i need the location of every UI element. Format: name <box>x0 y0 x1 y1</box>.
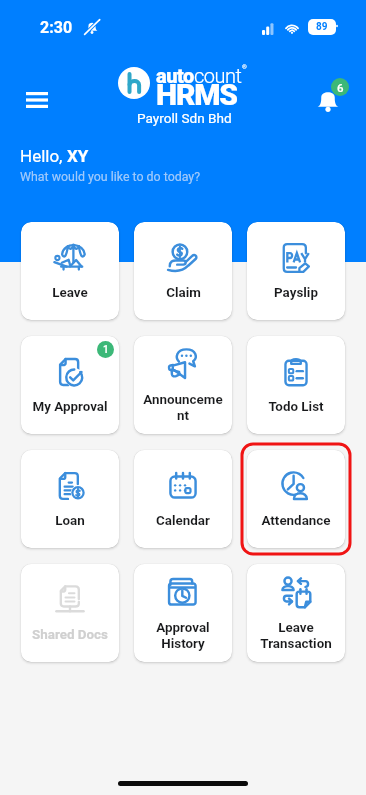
staticText: XY <box>67 146 89 166</box>
staticText: Leave <box>52 285 88 301</box>
staticText: HRMS <box>156 77 237 112</box>
staticText: 1 <box>103 344 109 356</box>
button[interactable]: Payslip <box>247 222 345 320</box>
button[interactable]: Announcement <box>134 336 232 434</box>
staticText: Todo List <box>268 399 324 415</box>
button[interactable]: Menu <box>18 81 56 119</box>
staticText: Calendar <box>156 513 210 529</box>
button[interactable]: Leave <box>21 222 119 320</box>
button[interactable]: Calendar <box>134 450 232 548</box>
staticText: 2:30 <box>40 18 73 37</box>
button[interactable]: Notifications <box>312 74 354 116</box>
staticText: count <box>194 64 242 87</box>
staticText: Leave Transaction <box>256 620 336 651</box>
staticText: ® <box>242 63 247 70</box>
button[interactable]: Shared Docs <box>21 564 119 662</box>
staticText: Payroll Sdn Bhd <box>137 110 232 126</box>
staticText: Hello, <box>20 146 67 166</box>
button[interactable]: Leave Transaction <box>247 564 345 662</box>
button[interactable]: Approval History <box>134 564 232 662</box>
staticText: Announcement <box>143 392 223 423</box>
button[interactable]: Loan <box>21 450 119 548</box>
staticText: Approval History <box>143 620 223 651</box>
button[interactable]: Attendance <box>247 450 345 548</box>
staticText: 89 <box>316 21 328 33</box>
staticText: Attendance <box>261 513 331 529</box>
staticText: Claim <box>166 285 201 301</box>
button[interactable]: Todo List <box>247 336 345 434</box>
staticText: 6 <box>337 81 344 94</box>
button[interactable]: Claim <box>134 222 232 320</box>
button[interactable]: My Approval <box>21 336 119 434</box>
staticText: My Approval <box>32 399 108 415</box>
staticText: auto <box>156 64 194 87</box>
staticText: Loan <box>55 513 85 529</box>
staticText: Payslip <box>274 285 318 301</box>
staticText: What would you like to do today? <box>20 169 201 184</box>
staticText: Shared Docs <box>32 627 108 643</box>
